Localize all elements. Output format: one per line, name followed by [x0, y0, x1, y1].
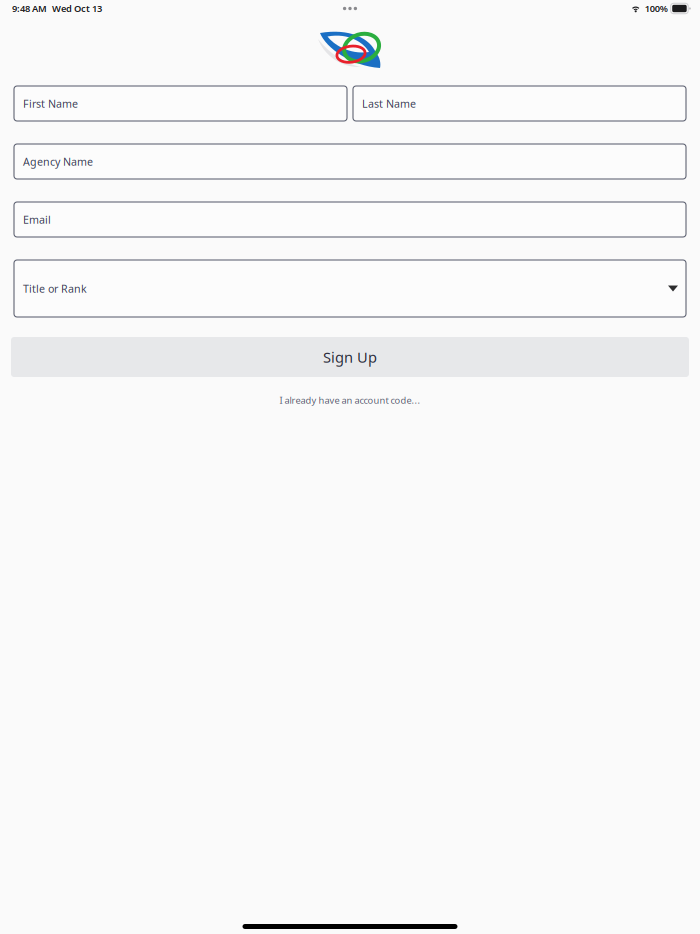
staticText: Wed Oct 13 — [52, 2, 102, 15]
staticText: Sign Up — [323, 347, 377, 367]
staticText: 100% — [645, 2, 668, 15]
staticText: Email — [23, 212, 51, 227]
button[interactable]: Email — [14, 202, 686, 237]
button[interactable]: Sign Up — [11, 337, 689, 377]
button[interactable]: Title or Rank — [14, 260, 686, 317]
button[interactable]: Agency Name — [14, 144, 686, 179]
button[interactable]: I already have an account code... — [279, 394, 420, 406]
button[interactable]: Last Name — [353, 86, 686, 121]
button[interactable]: First Name — [14, 86, 347, 121]
staticText: Title or Rank — [23, 281, 87, 296]
staticText: 9:48 AM — [12, 2, 47, 15]
staticText: I already have an account code... — [279, 394, 420, 406]
staticText: Agency Name — [23, 154, 93, 169]
staticText: First Name — [23, 96, 78, 111]
staticText: Last Name — [362, 96, 416, 111]
